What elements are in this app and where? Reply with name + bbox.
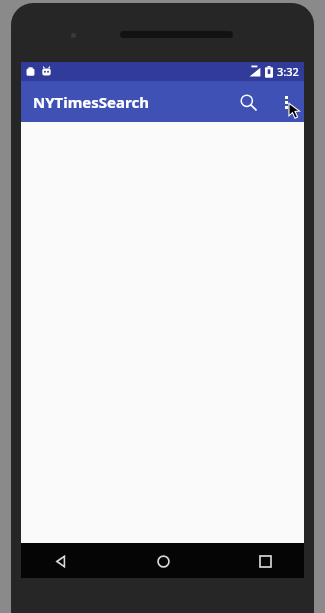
button[interactable]: Back bbox=[43, 544, 77, 578]
button[interactable]: Home bbox=[146, 544, 180, 578]
button[interactable]: More options bbox=[268, 84, 304, 120]
staticText: NYTimesSearch bbox=[33, 92, 149, 112]
staticText: 3:32 bbox=[277, 64, 299, 79]
button[interactable]: Search bbox=[228, 82, 268, 122]
button[interactable]: Recent apps bbox=[248, 544, 282, 578]
